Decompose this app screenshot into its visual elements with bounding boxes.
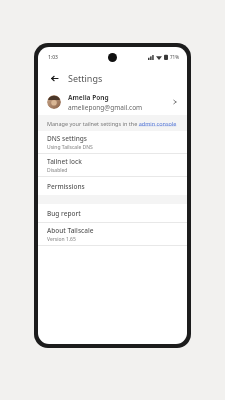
- staticText: About Tailscale: [47, 226, 94, 235]
- staticText: ameliepong@gmail.com: [68, 103, 143, 112]
- button[interactable]: About Tailscale: [38, 223, 187, 245]
- button[interactable]: Bug report: [38, 204, 187, 222]
- staticText: Permissions: [47, 182, 85, 191]
- staticText: Manage your tailnet settings in the admi…: [47, 120, 177, 127]
- button[interactable]: Back: [47, 71, 61, 85]
- button[interactable]: Manage your tailnet settings in the admi…: [38, 115, 187, 131]
- button[interactable]: Permissions: [38, 177, 187, 195]
- staticText: Bug report: [47, 209, 81, 218]
- staticText: DNS settings: [47, 134, 87, 143]
- staticText: Settings: [68, 72, 103, 84]
- staticText: Disabled: [47, 167, 68, 174]
- staticText: Tailnet lock: [47, 157, 82, 166]
- staticText: Version 1.65: [47, 236, 76, 243]
- button[interactable]: Amelia Pong: [38, 89, 187, 115]
- staticText: 1:03: [48, 54, 58, 61]
- staticText: Amelia Pong: [68, 93, 109, 102]
- staticText: Using Tailscale DNS: [47, 144, 93, 151]
- button[interactable]: Tailnet lock: [38, 154, 187, 176]
- staticText: 71%: [170, 54, 179, 60]
- button[interactable]: DNS settings: [38, 131, 187, 153]
